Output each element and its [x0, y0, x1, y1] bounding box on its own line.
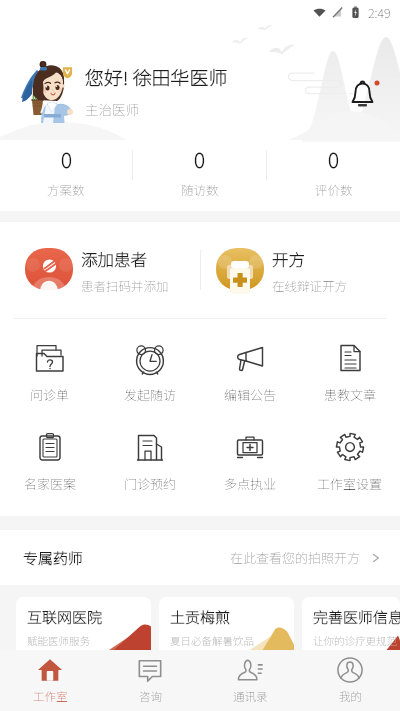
staticText: 名家医案: [24, 474, 77, 493]
staticText: 让你的诊疗更规范: [313, 633, 397, 648]
staticText: 赋能医师服务: [27, 633, 90, 648]
staticText: 互联网医院: [27, 606, 103, 628]
staticText: 添加患者: [81, 247, 147, 271]
staticText: 工作室: [33, 688, 68, 705]
staticText: 编辑公告: [224, 385, 277, 404]
button[interactable]: 添加患者: [0, 222, 200, 318]
button[interactable]: 发起随访: [100, 319, 200, 417]
staticText: 患教文章: [324, 385, 377, 404]
staticText: 评价数: [315, 180, 353, 198]
button[interactable]: 0: [0, 144, 132, 204]
staticText: 我的: [339, 688, 362, 705]
button[interactable]: 我的: [300, 650, 400, 711]
staticText: 0: [61, 144, 72, 174]
button[interactable]: 患教文章: [300, 319, 400, 417]
staticText: 患者扫码并添加: [81, 276, 169, 294]
staticText: 方案数: [47, 180, 85, 198]
staticText: 在线辩证开方: [272, 276, 348, 294]
button[interactable]: 门诊预约: [100, 417, 200, 516]
staticText: 通讯录: [233, 688, 268, 705]
button[interactable]: 编辑公告: [200, 319, 300, 417]
staticText: 发起随访: [124, 385, 177, 404]
button[interactable]: 土贡梅煎: [159, 597, 294, 659]
staticText: 开方: [272, 247, 305, 271]
staticText: 完善医师信息: [313, 606, 400, 628]
button[interactable]: 开方: [200, 222, 400, 318]
staticText: 专属药师: [23, 547, 84, 569]
button[interactable]: 0: [133, 144, 266, 204]
staticText: 咨询: [139, 688, 162, 705]
staticText: 随访数: [181, 180, 219, 198]
staticText: 夏日必备解暑饮品: [170, 633, 254, 648]
staticText: 多点执业: [224, 474, 277, 493]
button[interactable]: 完善医师信息: [302, 597, 400, 659]
button[interactable]: 互联网医院: [16, 597, 151, 659]
button[interactable]: 专属药师: [0, 530, 400, 585]
button[interactable]: 工作室: [0, 650, 100, 711]
button[interactable]: 咨询: [100, 650, 200, 711]
button[interactable]: 名家医案: [0, 417, 100, 516]
staticText: 2:49: [368, 3, 391, 21]
staticText: 问诊单: [30, 385, 70, 404]
staticText: 土贡梅煎: [170, 606, 231, 628]
button[interactable]: 工作室设置: [300, 417, 400, 516]
button[interactable]: 0: [267, 144, 400, 204]
staticText: 0: [194, 144, 205, 174]
button[interactable]: 多点执业: [200, 417, 300, 516]
button[interactable]: 问诊单: [0, 319, 100, 417]
button[interactable]: 通讯录: [200, 650, 300, 711]
staticText: 在此查看您的拍照开方: [230, 548, 361, 567]
staticText: 0: [328, 144, 339, 174]
staticText: 工作室设置: [317, 474, 383, 493]
staticText: 您好! 徐田华医师: [85, 63, 228, 91]
button[interactable]: Notifications: [347, 76, 385, 110]
staticText: 主治医师: [85, 99, 139, 119]
staticText: 门诊预约: [124, 474, 177, 493]
